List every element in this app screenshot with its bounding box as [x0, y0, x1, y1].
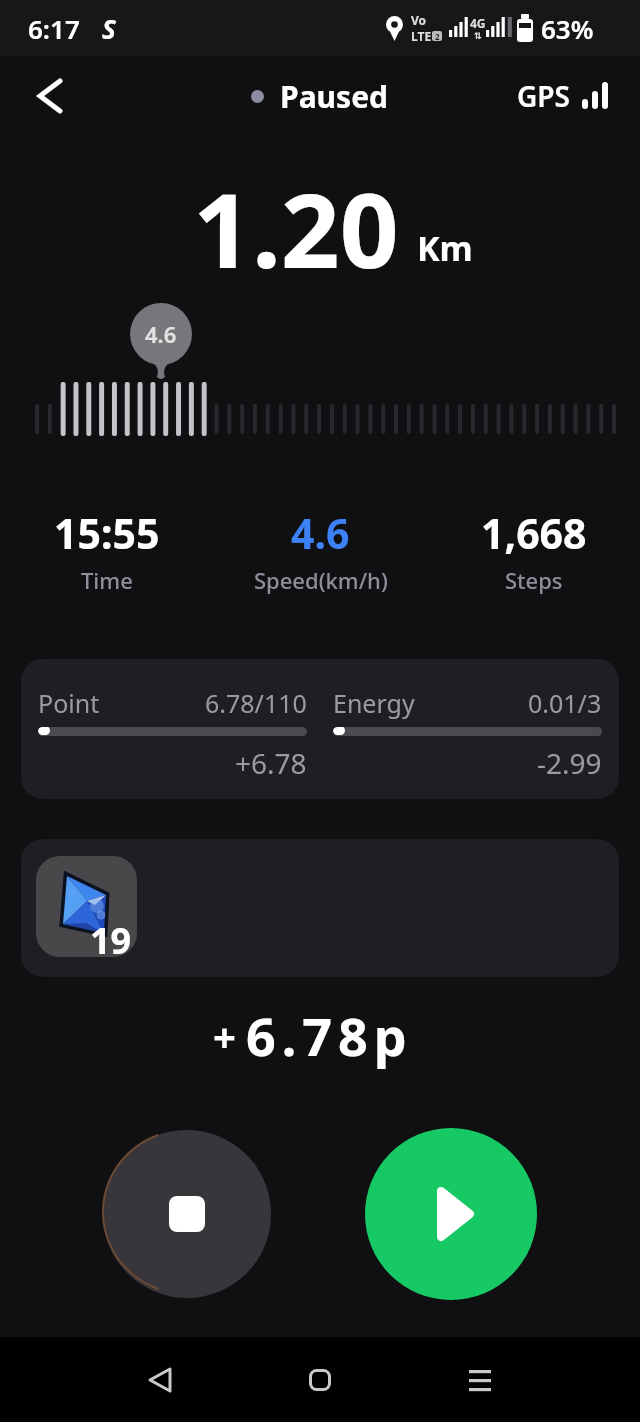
- staticText: GPS: [517, 77, 570, 115]
- staticText: 15:55: [54, 505, 160, 561]
- staticText: 0.01/3: [528, 686, 602, 720]
- staticText: -2.99: [537, 744, 602, 782]
- staticText: 2: [435, 31, 440, 41]
- button[interactable]: [38, 81, 60, 111]
- staticText: 6.78p: [246, 1000, 413, 1071]
- staticText: 4G: [470, 15, 486, 31]
- staticText: 1,668: [481, 505, 587, 561]
- staticText: Vo: [411, 12, 427, 28]
- staticText: 4.6: [145, 319, 177, 349]
- button[interactable]: [469, 1370, 491, 1392]
- staticText: Energy: [333, 686, 415, 720]
- staticText: +6.78: [235, 744, 307, 782]
- staticText: 1.20: [193, 158, 399, 298]
- staticText: 4.6: [291, 505, 350, 561]
- staticText: LTE: [411, 28, 432, 44]
- button[interactable]: [148, 1367, 172, 1393]
- button[interactable]: 19: [36, 856, 137, 957]
- staticText: S: [102, 11, 116, 46]
- staticText: 6:17: [28, 11, 80, 46]
- staticText: Paused: [280, 76, 389, 117]
- staticText: Speed(km/h): [254, 565, 388, 595]
- button[interactable]: [365, 1128, 537, 1300]
- button[interactable]: [103, 1130, 271, 1298]
- button[interactable]: [309, 1369, 331, 1391]
- staticText: ⇅: [474, 31, 482, 41]
- staticText: +: [213, 1009, 236, 1063]
- staticText: Steps: [505, 565, 563, 595]
- staticText: 6.78/110: [205, 686, 307, 720]
- staticText: Km: [417, 225, 473, 271]
- staticText: Point: [38, 686, 100, 720]
- staticText: 63%: [541, 11, 594, 46]
- staticText: Time: [81, 565, 133, 595]
- button[interactable]: GPS: [517, 77, 610, 115]
- staticText: 19: [90, 916, 132, 957]
